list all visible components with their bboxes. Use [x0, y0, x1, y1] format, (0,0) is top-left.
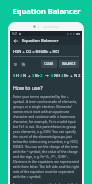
button[interactable]: Keyboard [13, 62, 18, 67]
staticText: Equation Balancer [22, 38, 59, 44]
staticText: Some equations cannot be balanced. And s… [13, 182, 79, 184]
staticText: Br [35, 73, 40, 79]
button[interactable]: Back [13, 38, 19, 44]
staticText: H3N + O2 = NH4Br + HCl [13, 49, 60, 54]
staticText: + [27, 73, 32, 79]
staticText: Equation Balancer [12, 6, 81, 16]
staticText: → [43, 73, 51, 79]
staticText: NH [54, 73, 61, 79]
staticText: N [74, 73, 78, 79]
staticText: 2 [78, 73, 79, 79]
staticText: 3 [20, 73, 23, 79]
staticText: H [16, 73, 20, 79]
staticText: 2 [40, 73, 43, 79]
staticText: + [69, 73, 74, 79]
staticText: 6 [51, 73, 54, 79]
staticText: 9:41 [12, 32, 18, 36]
staticText: Br [64, 73, 69, 79]
staticText: 8 [13, 73, 16, 79]
button[interactable]: BALANCE [59, 60, 79, 68]
button[interactable]: H3N + O2 = NH4Br + HCl [13, 49, 79, 57]
staticText: 4 [61, 73, 64, 79]
staticText: CLEAR [44, 62, 54, 66]
staticText: N [23, 73, 27, 79]
staticText: How to use? [13, 84, 43, 91]
button[interactable]: CLEAR [41, 60, 57, 68]
staticText: BALANCE [62, 62, 76, 66]
staticText: 3 [32, 73, 35, 79]
button[interactable]: Copy [21, 62, 26, 67]
staticText: Enter your terms separated by the + symb… [13, 94, 79, 179]
